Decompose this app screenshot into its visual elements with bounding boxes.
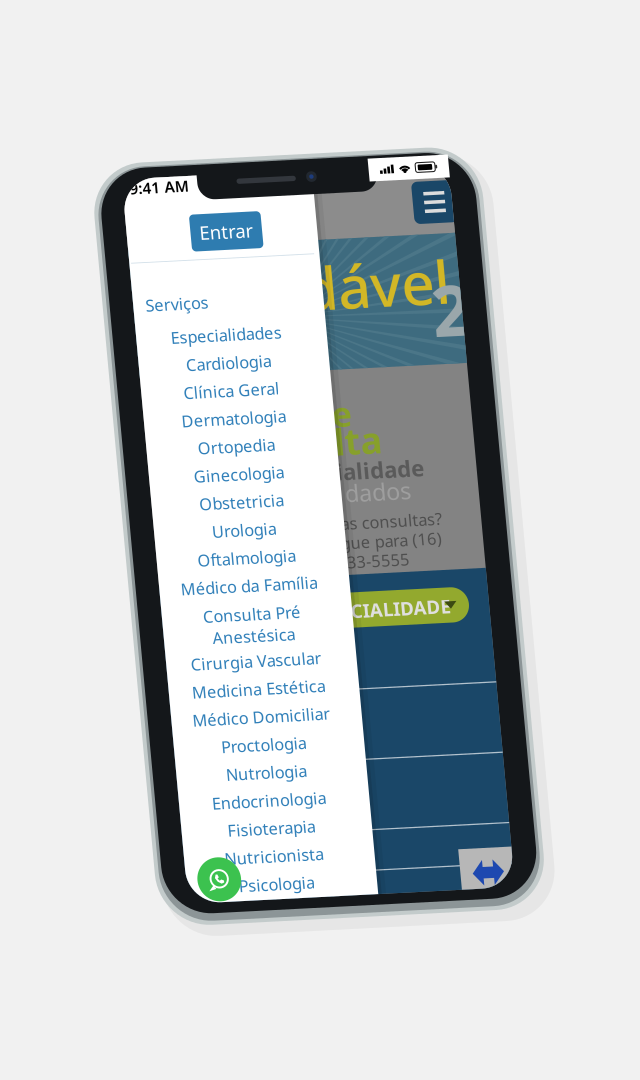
button[interactable]: Endocrinologia (6, 696, 200, 727)
button[interactable]: Cirurgia Vascular (6, 537, 200, 569)
button[interactable]: Obstetricia (6, 356, 200, 388)
button[interactable]: Consulta Pré (6, 491, 200, 533)
button[interactable]: Nutricionista (6, 759, 200, 791)
staticText: Nutricionista (46, 762, 160, 787)
button[interactable]: Clínica Geral (6, 230, 200, 261)
button[interactable]: Medicina Estética (6, 569, 200, 601)
staticText: Clínica Geral (48, 233, 158, 258)
staticText: Escolha a especialidade (18, 327, 315, 361)
staticText: Cirurgia Vascular (28, 541, 178, 565)
staticText: Ligue para (16) (197, 412, 328, 437)
staticText: sua consulta (9, 282, 270, 337)
staticText: Dermatologia (43, 265, 163, 289)
staticText: Especialidades (39, 170, 166, 194)
staticText: Consulta Pré (47, 487, 159, 512)
staticText: ESCOLHA A ESPECIALIDADE (43, 488, 331, 516)
staticText: Proctologia (54, 636, 152, 660)
staticText: Urologia (66, 391, 140, 416)
staticText: Prefere agendar suas consultas? (46, 390, 330, 415)
staticText: Nutrologia (56, 667, 149, 692)
button[interactable]: Ginecologia (6, 325, 200, 356)
button[interactable]: Ortopedia (6, 293, 200, 325)
button[interactable]: Oftalmologia (6, 420, 200, 451)
button[interactable]: Fisioterapia (6, 727, 200, 759)
staticText: Ortopedia (58, 296, 147, 321)
button[interactable]: Nutrologia (6, 664, 200, 696)
button[interactable]: Médico da Família (6, 451, 200, 483)
staticText: Cardiologia (54, 201, 152, 226)
staticText: 2 (340, 113, 386, 219)
button[interactable]: Dermatologia (6, 261, 200, 293)
staticText: Ginecologia (51, 328, 155, 353)
button[interactable]: Urologia (6, 388, 200, 420)
staticText: Agende (92, 252, 238, 304)
staticText: Endocrinologia (37, 699, 168, 724)
staticText: Medicina Estética (26, 572, 179, 597)
button[interactable]: Proctologia (6, 632, 200, 664)
staticText: saudável (82, 90, 364, 178)
staticText: Anestésica (55, 512, 150, 537)
staticText: Oftalmologia (46, 423, 159, 448)
button[interactable]: Cardiologia (6, 198, 200, 229)
staticText: 3333-5555 (195, 434, 289, 459)
staticText: Médico Domiciliar (24, 604, 182, 629)
staticText: Obstetricia (54, 360, 151, 385)
button[interactable]: Médico Domiciliar (6, 600, 200, 632)
staticText: e preencha os dados (41, 351, 298, 386)
button[interactable]: Especialidades (6, 166, 200, 198)
staticText: Fisioterapia (52, 731, 153, 756)
staticText: Médico da Família (24, 455, 181, 480)
button[interactable]: Escolha a especialidade (35, 481, 352, 521)
button[interactable]: Psicologia (6, 791, 200, 822)
